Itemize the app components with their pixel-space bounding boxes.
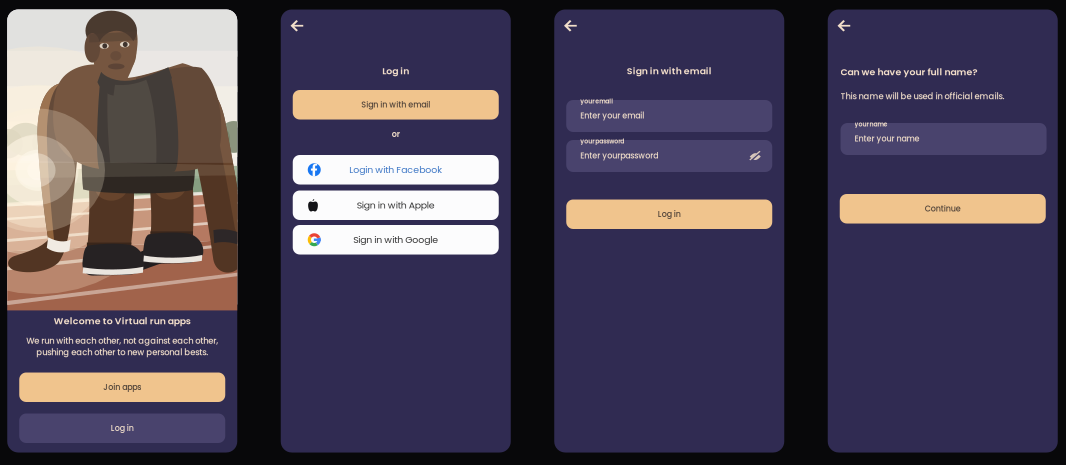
staticText: pushing each other to new personal bests… xyxy=(36,346,208,358)
staticText: This name will be used in official email… xyxy=(840,90,1004,102)
staticText: Welcome to Virtual run apps xyxy=(54,314,191,328)
staticText: Log in xyxy=(382,64,409,78)
button[interactable]: Back xyxy=(281,9,313,39)
staticText: Sign in with Apple xyxy=(357,199,435,212)
staticText: We run with each other, not against each… xyxy=(26,335,218,347)
button[interactable]: Sign in with email xyxy=(293,90,499,119)
button[interactable]: Back xyxy=(828,9,860,39)
staticText: Join apps xyxy=(103,382,141,393)
button[interactable]: Login with Facebook xyxy=(293,155,499,184)
staticText: Login with Facebook xyxy=(349,163,442,176)
button[interactable]: Join apps xyxy=(19,372,225,402)
staticText: Log in xyxy=(658,209,681,220)
staticText: Enter yourpassword xyxy=(580,150,658,161)
button[interactable]: Log in xyxy=(19,413,225,443)
staticText: or xyxy=(392,128,400,140)
staticText: Log in xyxy=(111,423,134,434)
button[interactable]: Back xyxy=(554,9,587,39)
staticText: your password xyxy=(580,137,624,146)
button[interactable]: Log in xyxy=(566,199,772,229)
staticText: Continue xyxy=(925,203,961,214)
staticText: Can we have your full name? xyxy=(840,65,977,79)
staticText: Enter your email xyxy=(580,110,644,121)
staticText: Enter your name xyxy=(854,133,919,144)
button[interactable]: Sign in with Apple xyxy=(293,190,499,220)
button[interactable]: Continue xyxy=(840,194,1046,223)
staticText: Sign in with email xyxy=(361,99,430,110)
button[interactable]: Sign in with Google xyxy=(293,225,499,254)
staticText: your email xyxy=(580,97,613,106)
staticText: Sign in with Google xyxy=(353,233,438,246)
staticText: Sign in with email xyxy=(627,64,712,78)
staticText: your name xyxy=(854,120,887,129)
